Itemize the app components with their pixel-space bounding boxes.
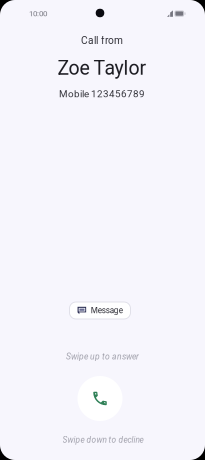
- staticText: Call from: [81, 35, 123, 47]
- staticText: Zoe Taylor: [57, 57, 146, 79]
- button[interactable]: Answer call: [75, 373, 125, 423]
- staticText: Swipe down to decline: [62, 435, 143, 445]
- button[interactable]: Message: [69, 302, 130, 319]
- staticText: 10:00: [29, 9, 47, 18]
- staticText: Message: [91, 306, 123, 315]
- staticText: Mobile 123456789: [59, 88, 145, 100]
- staticText: Swipe up to answer: [66, 351, 139, 361]
